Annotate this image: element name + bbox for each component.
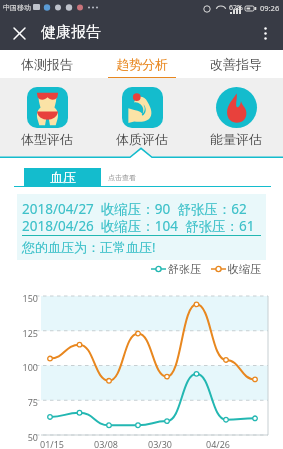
staticText: 改善指导: [210, 56, 262, 72]
staticText: 能量评估: [210, 131, 262, 147]
staticText: 03/08: [91, 438, 121, 449]
button[interactable]: 血压: [24, 168, 101, 186]
staticText: 趋势分析: [116, 56, 168, 72]
button[interactable]: 改善指导: [198, 50, 274, 78]
staticText: 体质评估: [116, 131, 168, 147]
button[interactable]: 体质评估: [105, 87, 179, 147]
staticText: 点击查看: [108, 173, 136, 182]
staticText: 04/26: [203, 438, 233, 449]
button[interactable]: 体型评估: [10, 87, 84, 147]
staticText: 100: [16, 361, 38, 373]
staticText: 收缩压: [228, 262, 261, 276]
staticText: 75: [16, 396, 38, 408]
staticText: 体测报告: [21, 56, 73, 72]
staticText: 01/15: [37, 438, 67, 449]
staticText: 体型评估: [21, 131, 73, 147]
staticText: 舒张压: [168, 262, 201, 276]
button[interactable]: 体测报告: [9, 50, 85, 78]
staticText: 2018/04/26 收缩压：104 舒张压：61: [22, 217, 255, 234]
staticText: 2018/04/27 收缩压：90 舒张压：62: [22, 200, 247, 217]
staticText: 03/30: [145, 438, 175, 449]
staticText: 50: [16, 431, 38, 443]
staticText: 您的血压为：正常血压!: [22, 238, 156, 256]
staticText: 09:26: [260, 3, 280, 13]
staticText: 中国移动: [3, 3, 31, 12]
button[interactable]: 趋势分析: [104, 50, 180, 78]
button[interactable]: 能量评估: [199, 87, 273, 147]
staticText: 150: [16, 292, 38, 304]
button[interactable]: Close: [6, 20, 32, 46]
staticText: 62%: [229, 3, 243, 13]
button[interactable]: More options: [254, 22, 276, 44]
staticText: 健康报告: [41, 23, 101, 42]
staticText: 125: [16, 327, 38, 339]
staticText: 血压: [50, 169, 76, 185]
